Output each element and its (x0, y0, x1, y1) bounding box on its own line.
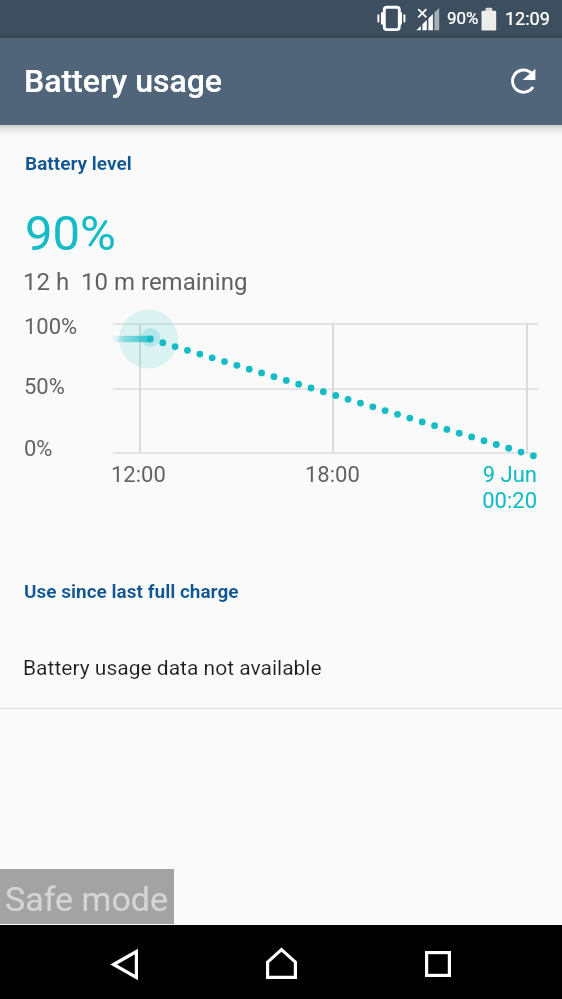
staticText: Safe mode (5, 879, 168, 919)
staticText: 90% (447, 8, 479, 28)
staticText: 12 h 10 m remaining (23, 268, 248, 296)
staticText: 9 Jun 00:20 (456, 462, 537, 513)
button[interactable]: Refresh (500, 53, 552, 105)
button[interactable]: Home (251, 933, 312, 994)
staticText: 100% (24, 314, 78, 340)
staticText: Battery level (25, 152, 132, 174)
staticText: 12:09 (505, 8, 550, 29)
button[interactable]: Recent apps (408, 934, 468, 994)
staticText: 50% (24, 374, 65, 400)
staticText: Battery usage data not available (23, 656, 322, 681)
staticText: 0% (24, 436, 53, 462)
staticText: Battery usage (24, 62, 222, 100)
button[interactable]: Back (95, 934, 155, 994)
staticText: 90% (25, 205, 116, 262)
button[interactable]: Safe mode (0, 869, 174, 924)
staticText: 12:00 (111, 462, 166, 488)
staticText: Use since last full charge (24, 580, 239, 602)
staticText: 18:00 (305, 462, 360, 488)
